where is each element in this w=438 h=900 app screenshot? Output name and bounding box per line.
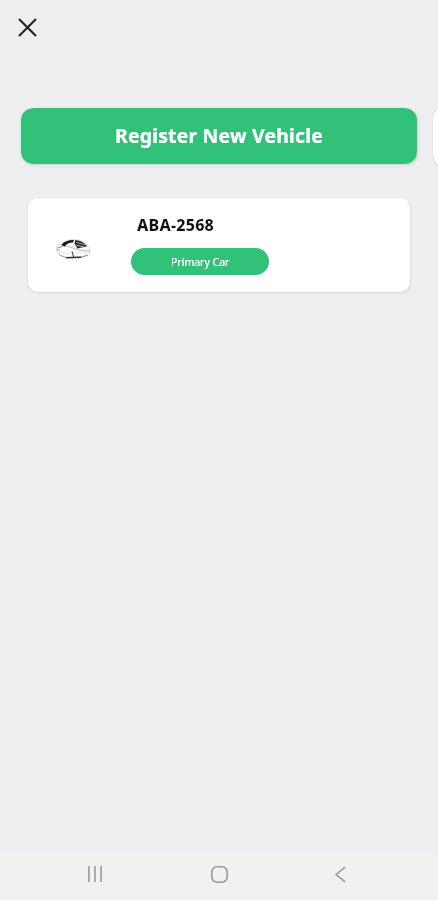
button[interactable]: ABA-2568 [28,198,410,292]
button[interactable]: Back [320,854,360,894]
button[interactable]: Register New Vehicle [21,108,417,164]
staticText: Primary Car [171,255,230,269]
button[interactable]: Home [199,854,239,894]
button[interactable]: Primary Car [131,248,269,275]
button[interactable]: Recent apps [75,854,115,894]
button[interactable]: Close [10,10,45,45]
staticText: Register New Vehicle [115,122,323,148]
staticText: ABA-2568 [137,214,215,236]
button[interactable] [433,109,438,165]
